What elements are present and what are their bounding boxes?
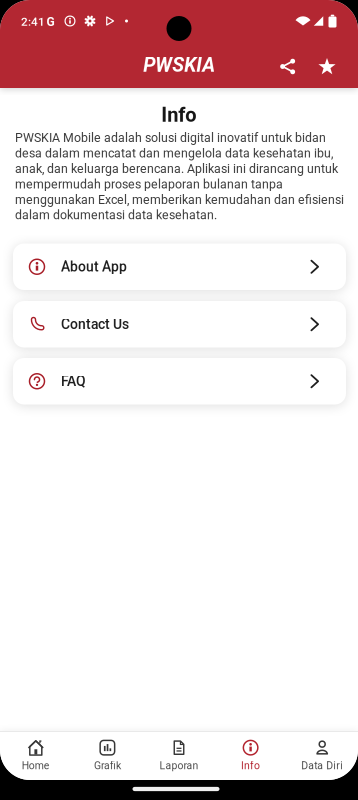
button[interactable]: Favorite [310, 47, 344, 87]
staticText: Home [22, 760, 50, 772]
staticText: PWSKIA Mobile adalah solusi digital inov… [15, 131, 344, 222]
staticText: FAQ [61, 373, 86, 389]
staticText: 2:41 [21, 15, 45, 29]
button[interactable]: Home [1, 733, 71, 777]
button[interactable]: Share [270, 46, 304, 86]
staticText: G [46, 15, 54, 29]
button[interactable]: About App [13, 243, 346, 290]
staticText: Contact Us [61, 316, 129, 332]
staticText: Info [161, 103, 196, 127]
staticText: Grafik [94, 760, 121, 772]
staticText: PWSKIA [143, 53, 215, 76]
staticText: Data Diri [301, 760, 343, 772]
button[interactable]: Laporan [144, 733, 214, 777]
button[interactable]: Grafik [72, 733, 142, 777]
button[interactable]: FAQ [13, 358, 346, 404]
button[interactable]: Info [216, 733, 286, 777]
button[interactable]: Contact Us [13, 301, 346, 347]
staticText: Laporan [159, 760, 198, 772]
button[interactable]: Data Diri [287, 733, 357, 777]
staticText: About App [61, 259, 127, 275]
staticText: Info [241, 760, 260, 772]
